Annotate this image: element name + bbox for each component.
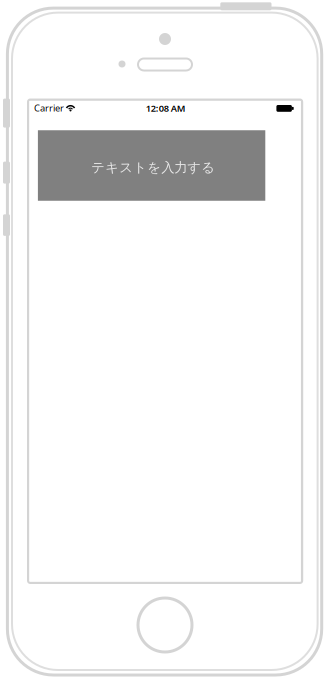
staticText: 12:08 AM (146, 102, 186, 114)
staticText: テキストを入力する (91, 159, 215, 176)
staticText: Carrier (34, 102, 64, 114)
button[interactable]: テキストを入力する (38, 130, 265, 201)
